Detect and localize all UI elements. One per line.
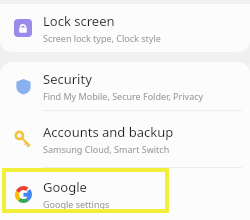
button[interactable]: Security bbox=[0, 62, 250, 110]
staticText: Security bbox=[43, 70, 92, 88]
staticText: Accounts and backup bbox=[43, 123, 174, 141]
other: Security bbox=[15, 78, 32, 95]
staticText: Google bbox=[43, 178, 87, 196]
staticText: Samsung Cloud, Smart Switch bbox=[43, 143, 170, 155]
button[interactable]: Accounts and backup bbox=[0, 111, 250, 167]
button[interactable]: Google settings bbox=[0, 168, 250, 220]
staticText: Screen lock type, Clock style bbox=[43, 32, 161, 44]
other: Google settings bbox=[15, 186, 32, 203]
staticText: Find My Mobile, Secure Folder, Privacy bbox=[43, 90, 204, 102]
other: Accounts and backup bbox=[14, 130, 32, 148]
staticText: Google settings bbox=[43, 198, 110, 210]
other: Lock screen bbox=[14, 19, 32, 37]
staticText: Lock screen bbox=[43, 12, 115, 30]
button[interactable]: Lock screen bbox=[0, 4, 250, 52]
